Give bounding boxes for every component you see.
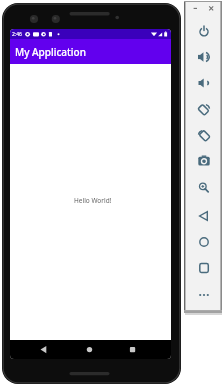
button[interactable] (186, 123, 220, 147)
button[interactable] (36, 340, 51, 359)
button[interactable] (82, 340, 97, 359)
button[interactable] (186, 19, 220, 43)
staticText: Hello World! (74, 196, 112, 205)
button[interactable] (186, 176, 220, 200)
button[interactable] (186, 204, 220, 228)
button[interactable] (186, 149, 220, 173)
button[interactable] (186, 45, 220, 69)
button[interactable] (204, 2, 218, 15)
staticText: My Application (15, 45, 86, 59)
button[interactable] (186, 97, 220, 121)
button[interactable] (186, 71, 220, 95)
button[interactable] (186, 283, 220, 307)
button[interactable] (125, 340, 140, 359)
button[interactable] (186, 256, 220, 280)
staticText: 2:46 (12, 31, 22, 38)
button[interactable] (186, 230, 220, 254)
button[interactable] (188, 2, 202, 15)
